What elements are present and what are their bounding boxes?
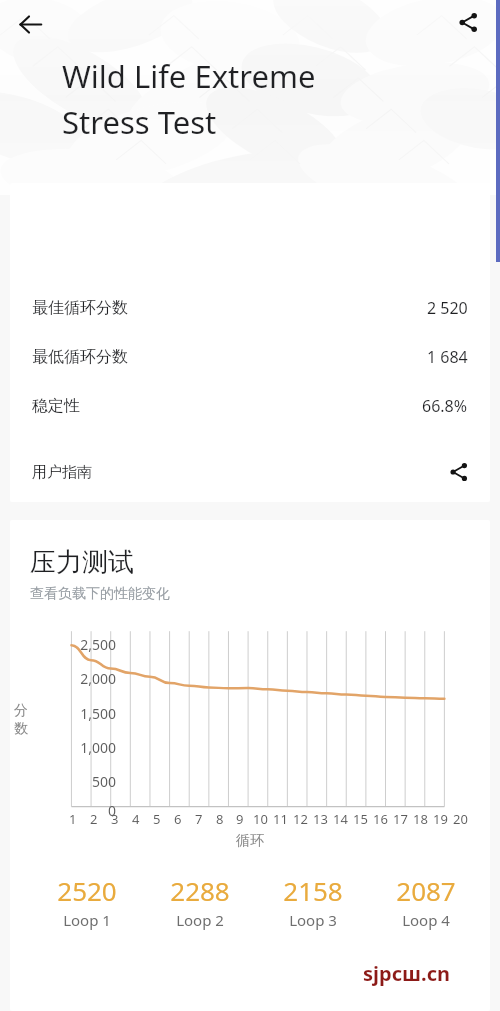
button[interactable]: 2288	[152, 863, 248, 935]
staticText: 7	[195, 810, 203, 828]
staticText: 数	[14, 720, 28, 738]
staticText: Loop 1	[63, 910, 111, 930]
staticText: 1 684	[427, 346, 468, 368]
staticText: 2 520	[427, 297, 468, 319]
staticText: Wild Life Extreme	[62, 55, 316, 97]
staticText: 1,500	[80, 704, 116, 723]
staticText: 最佳循环分数	[32, 298, 128, 318]
staticText: 3	[111, 810, 119, 828]
staticText: 5	[153, 810, 161, 828]
staticText: 19	[433, 810, 448, 828]
button[interactable]: 稳定性	[10, 394, 490, 418]
staticText: 9	[236, 810, 244, 828]
staticText: 8	[216, 810, 224, 828]
staticText: 1	[69, 810, 77, 828]
staticText: 14	[333, 810, 348, 828]
staticText: 2,000	[80, 669, 116, 688]
staticText: 循环	[236, 832, 264, 850]
staticText: 18	[413, 810, 428, 828]
staticText: 最低循环分数	[32, 347, 128, 367]
staticText: Loop 2	[176, 910, 224, 930]
staticText: Stress Test	[62, 101, 217, 143]
staticText: 稳定性	[32, 396, 80, 416]
staticText: Loop 4	[402, 910, 450, 930]
staticText: 13	[313, 810, 328, 828]
staticText: 分	[14, 702, 28, 720]
button[interactable]: 最佳循环分数	[10, 296, 490, 320]
staticText: 2	[90, 810, 98, 828]
staticText: 20	[453, 810, 468, 828]
staticText: 6	[174, 810, 182, 828]
staticText: 查看负载下的性能变化	[30, 585, 170, 603]
button[interactable]: 2520	[38, 863, 135, 935]
staticText: 用户指南	[32, 463, 92, 482]
staticText: 16	[373, 810, 388, 828]
staticText: 17	[393, 810, 408, 828]
staticText: 1,000	[80, 738, 116, 757]
staticText: 2520	[57, 873, 117, 908]
staticText: 15	[353, 810, 368, 828]
staticText: 2288	[170, 873, 230, 908]
staticText: 11	[273, 810, 288, 828]
button[interactable]: Share	[446, 0, 490, 44]
button[interactable]: 2087	[378, 863, 474, 935]
staticText: 2087	[396, 873, 456, 908]
staticText: 2158	[283, 873, 343, 908]
button[interactable]: 用户指南	[10, 448, 490, 496]
staticText: 500	[91, 772, 116, 791]
staticText: sjpcш.cn	[363, 960, 450, 987]
staticText: 10	[253, 810, 268, 828]
button[interactable]: 2158	[265, 863, 361, 935]
button[interactable]: Back	[6, 0, 54, 48]
button[interactable]: 最低循环分数	[10, 345, 490, 369]
staticText: 12	[293, 810, 308, 828]
staticText: 压力测试	[30, 546, 134, 579]
staticText: 0	[107, 801, 116, 820]
staticText: 66.8%	[422, 395, 468, 417]
staticText: 4	[132, 810, 140, 828]
staticText: Loop 3	[289, 910, 337, 930]
staticText: 2,500	[80, 635, 116, 654]
